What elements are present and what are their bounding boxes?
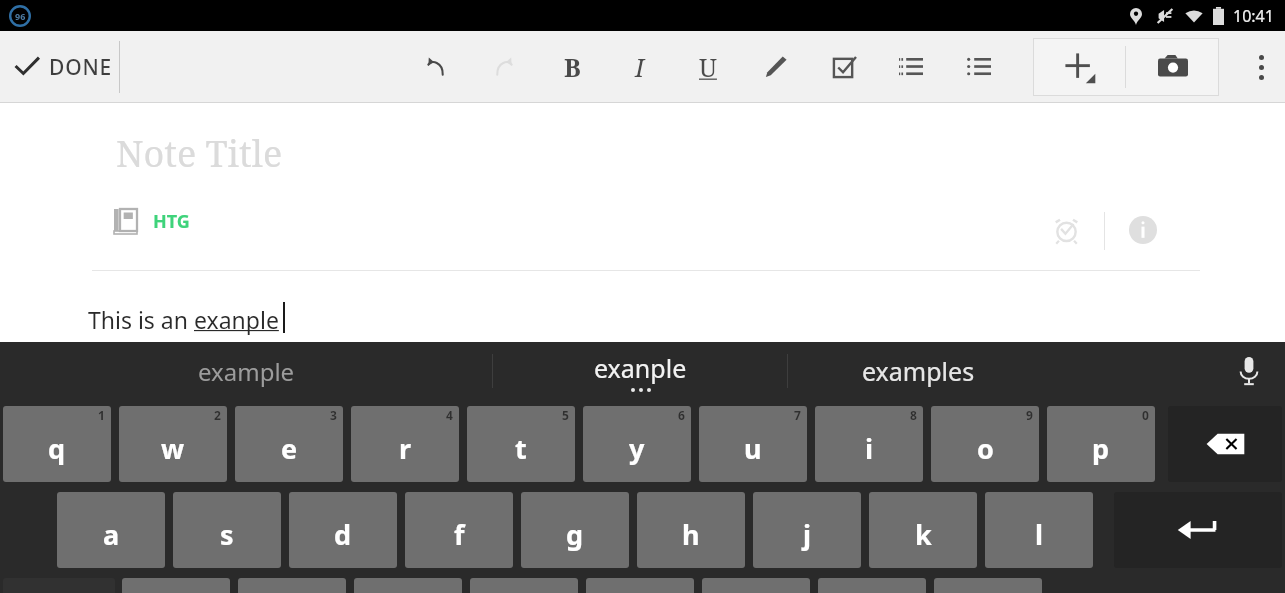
- staticText: u: [744, 430, 762, 467]
- button[interactable]: h: [637, 492, 745, 568]
- staticText: 6: [678, 407, 685, 423]
- staticText: h: [682, 516, 700, 553]
- button[interactable]: Info: [1119, 206, 1167, 254]
- button[interactable]: Notifications: [9, 5, 31, 27]
- staticText: 7: [794, 407, 801, 423]
- staticText: 5: [562, 407, 569, 423]
- button[interactable]: s: [173, 492, 281, 568]
- button[interactable]: p: [1047, 406, 1155, 482]
- staticText: e: [281, 430, 298, 467]
- staticText: This is an: [88, 304, 194, 335]
- staticText: exanple: [194, 304, 279, 335]
- staticText: q: [48, 430, 66, 467]
- staticText: r: [399, 430, 412, 467]
- button[interactable]: DONE: [0, 31, 133, 103]
- button[interactable]: U: [683, 31, 733, 103]
- staticText: 2: [214, 407, 221, 423]
- button[interactable]: t: [467, 406, 575, 482]
- staticText: exanple: [594, 351, 687, 385]
- button[interactable]: Enter: [1114, 492, 1282, 568]
- button[interactable]: examples: [788, 342, 1048, 400]
- button[interactable]: B: [547, 31, 597, 103]
- staticText: p: [1092, 430, 1110, 467]
- staticText: w: [161, 430, 185, 467]
- button[interactable]: w: [119, 406, 227, 482]
- button[interactable]: k: [869, 492, 977, 568]
- staticText: 0: [1142, 407, 1149, 423]
- staticText: example: [198, 355, 295, 388]
- staticText: f: [454, 516, 465, 553]
- button[interactable]: e: [235, 406, 343, 482]
- staticText: examples: [862, 354, 975, 388]
- button[interactable]: q: [3, 406, 111, 482]
- button[interactable]: Bulleted list: [954, 31, 1004, 103]
- button[interactable]: Backspace: [1168, 406, 1282, 482]
- staticText: 1: [98, 407, 105, 423]
- staticText: k: [915, 516, 932, 553]
- button[interactable]: HTG: [114, 209, 190, 234]
- button[interactable]: g: [521, 492, 629, 568]
- button[interactable]: o: [931, 406, 1039, 482]
- staticText: s: [220, 516, 234, 553]
- staticText: 10:41: [1233, 5, 1274, 27]
- button[interactable]: f: [405, 492, 513, 568]
- button[interactable]: More options: [1237, 31, 1285, 103]
- button[interactable]: y: [583, 406, 691, 482]
- button[interactable]: I: [615, 31, 665, 103]
- button[interactable]: u: [699, 406, 807, 482]
- staticText: t: [515, 430, 527, 467]
- staticText: 3: [330, 407, 337, 423]
- button[interactable]: l: [985, 492, 1093, 568]
- staticText: g: [566, 516, 584, 553]
- staticText: DONE: [49, 53, 113, 82]
- button[interactable]: exanple: [493, 342, 787, 400]
- button[interactable]: Reminder: [1042, 206, 1090, 254]
- staticText: i: [865, 430, 874, 467]
- button[interactable]: j: [753, 492, 861, 568]
- button[interactable]: Voice input: [1213, 342, 1285, 400]
- staticText: I: [635, 50, 645, 84]
- button[interactable]: example: [0, 342, 492, 400]
- button[interactable]: Redo: [479, 31, 529, 103]
- button[interactable]: Add: [1033, 38, 1125, 96]
- staticText: 8: [910, 407, 917, 423]
- button[interactable]: d: [289, 492, 397, 568]
- button[interactable]: Camera: [1126, 38, 1219, 96]
- button[interactable]: Undo: [411, 31, 461, 103]
- staticText: HTG: [153, 209, 190, 234]
- staticText: l: [1035, 516, 1044, 553]
- button[interactable]: Numbered list: [886, 31, 936, 103]
- staticText: 4: [446, 407, 453, 423]
- staticText: 96: [15, 10, 26, 22]
- button[interactable]: i: [815, 406, 923, 482]
- staticText: a: [103, 516, 120, 553]
- button[interactable]: Checkbox: [819, 31, 869, 103]
- staticText: U: [699, 50, 717, 84]
- staticText: y: [629, 430, 645, 467]
- staticText: 9: [1026, 407, 1033, 423]
- button[interactable]: Note Title: [116, 129, 283, 178]
- staticText: B: [564, 50, 581, 84]
- staticText: o: [977, 430, 994, 467]
- staticText: d: [334, 516, 352, 553]
- button[interactable]: a: [57, 492, 165, 568]
- button[interactable]: r: [351, 406, 459, 482]
- staticText: j: [803, 516, 812, 553]
- button[interactable]: Highlighter: [751, 31, 801, 103]
